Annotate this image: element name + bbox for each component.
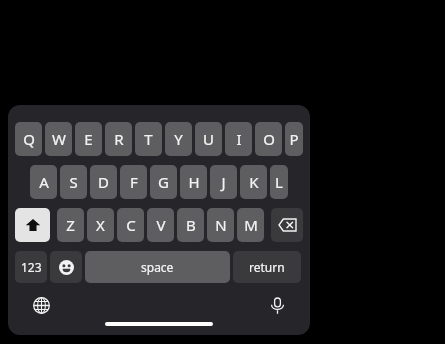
button[interactable]: J [210,165,237,199]
staticText: U [203,129,214,149]
button[interactable]: Q [15,122,42,156]
staticText: H [188,172,200,192]
button[interactable]: A [30,165,57,199]
staticText: L [275,172,283,192]
button[interactable]: Backspace [271,208,303,242]
staticText: F [130,172,138,192]
button[interactable]: G [150,165,177,199]
staticText: J [221,172,226,192]
staticText: 123 [21,259,42,275]
button[interactable]: I [225,122,252,156]
button[interactable]: P [285,122,303,156]
staticText: X [96,215,105,235]
button[interactable]: Voice input [264,292,290,318]
button[interactable]: M [237,208,264,242]
button[interactable]: H [180,165,207,199]
staticText: A [39,172,49,192]
button[interactable]: E [75,122,102,156]
button[interactable]: Emoji [50,251,82,283]
button[interactable]: return [233,251,301,283]
staticText: E [84,129,93,149]
button[interactable]: K [240,165,267,199]
staticText: Y [174,129,183,149]
staticText: C [126,215,136,235]
button[interactable]: C [117,208,144,242]
staticText: return [249,259,285,275]
staticText: O [263,129,275,149]
button[interactable]: Z [57,208,84,242]
staticText: M [244,215,258,235]
staticText: D [98,172,109,192]
button[interactable]: O [255,122,282,156]
button[interactable]: Y [165,122,192,156]
button[interactable]: N [207,208,234,242]
staticText: T [144,129,153,149]
staticText: space [141,259,174,275]
button[interactable]: V [147,208,174,242]
button[interactable]: F [120,165,147,199]
button[interactable]: R [105,122,132,156]
staticText: K [249,172,259,192]
button[interactable]: L [270,165,288,199]
staticText: B [186,215,196,235]
button[interactable]: Shift [15,208,50,242]
staticText: I [236,129,242,149]
button[interactable]: X [87,208,114,242]
button[interactable]: space [85,251,230,283]
button[interactable]: D [90,165,117,199]
button[interactable]: B [177,208,204,242]
staticText: W [52,129,66,149]
staticText: Q [23,129,35,149]
staticText: N [215,215,227,235]
staticText: S [69,172,78,192]
staticText: P [289,129,299,149]
button[interactable]: T [135,122,162,156]
button[interactable]: 123 [15,251,47,283]
staticText: G [158,172,169,192]
button[interactable]: U [195,122,222,156]
staticText: R [114,129,124,149]
staticText: V [156,215,166,235]
staticText: Z [66,215,75,235]
button[interactable]: W [45,122,72,156]
button[interactable]: Change keyboard [28,292,54,318]
button[interactable]: S [60,165,87,199]
